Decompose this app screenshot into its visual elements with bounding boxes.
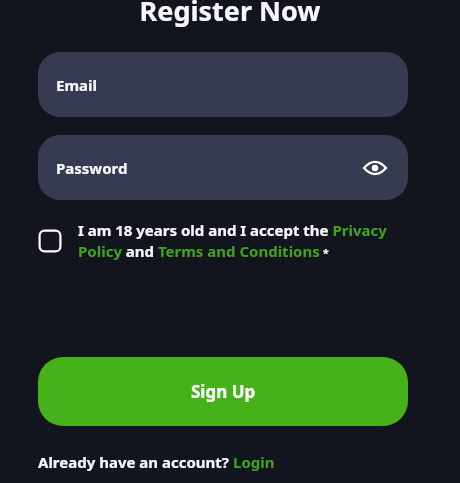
staticText: Register Now — [0, 0, 460, 29]
button[interactable]: Login — [233, 452, 275, 472]
button[interactable]: Show password — [362, 155, 388, 181]
button[interactable]: Password — [38, 135, 408, 200]
staticText: I am 18 years old and I accept the Priva… — [78, 220, 408, 262]
button[interactable]: Sign Up — [38, 357, 408, 426]
staticText: Email — [56, 75, 97, 95]
staticText: Sign Up — [191, 380, 256, 403]
staticText: Password — [56, 158, 128, 178]
button[interactable]: Email — [38, 52, 408, 117]
staticText: Login — [233, 452, 275, 472]
button[interactable]: I am 18 years old and I accept the Priva… — [38, 220, 408, 262]
staticText: Already have an account? — [38, 452, 233, 472]
